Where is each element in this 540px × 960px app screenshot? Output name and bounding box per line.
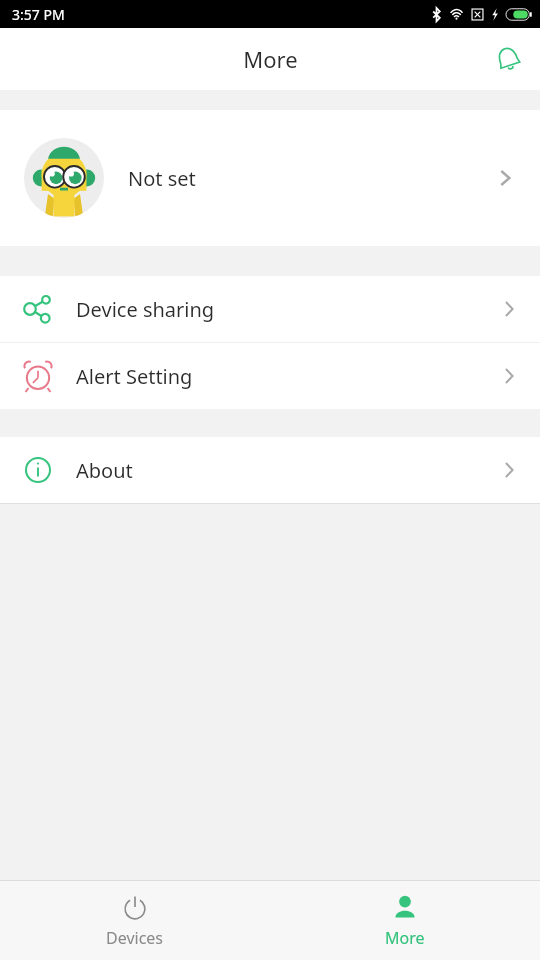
- button[interactable]: Device sharing: [0, 276, 540, 342]
- staticText: Device sharing: [76, 296, 215, 323]
- staticText: More: [385, 927, 425, 949]
- button[interactable]: Notifications off: [484, 35, 532, 83]
- staticText: About: [76, 457, 133, 484]
- button[interactable]: About: [0, 437, 540, 503]
- button[interactable]: Not set: [0, 110, 540, 246]
- staticText: Alert Setting: [76, 363, 193, 390]
- staticText: More: [243, 44, 298, 74]
- staticText: 3:57 PM: [12, 5, 65, 24]
- button[interactable]: More: [270, 881, 540, 960]
- button[interactable]: Alert Setting: [0, 343, 540, 409]
- staticText: Devices: [106, 927, 164, 949]
- button[interactable]: Devices: [0, 881, 270, 960]
- staticText: Not set: [128, 165, 196, 192]
